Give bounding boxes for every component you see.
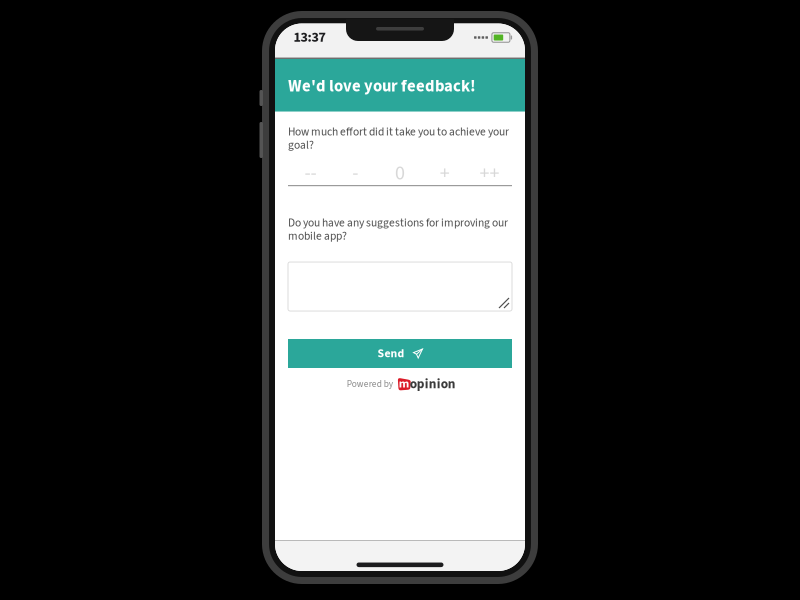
- button[interactable]: Send: [288, 339, 512, 368]
- staticText: +: [440, 159, 450, 182]
- staticText: Do you have any suggestions for improvin…: [288, 215, 508, 244]
- button[interactable]: --: [288, 159, 333, 182]
- button[interactable]: 0: [378, 159, 422, 182]
- staticText: Send: [377, 345, 404, 362]
- staticText: m: [399, 375, 410, 392]
- staticText: Powered by: [347, 377, 393, 391]
- staticText: 0: [395, 159, 405, 182]
- staticText: -: [352, 159, 358, 182]
- staticText: We'd love your feedback!: [288, 74, 476, 98]
- button[interactable]: +: [422, 159, 467, 182]
- staticText: opinion: [410, 374, 456, 393]
- staticText: How much effort did it take you to achie…: [288, 124, 509, 153]
- staticText: 13:37: [293, 27, 325, 47]
- staticText: --: [304, 159, 316, 182]
- button[interactable]: ++: [467, 159, 512, 182]
- staticText: ++: [480, 159, 500, 182]
